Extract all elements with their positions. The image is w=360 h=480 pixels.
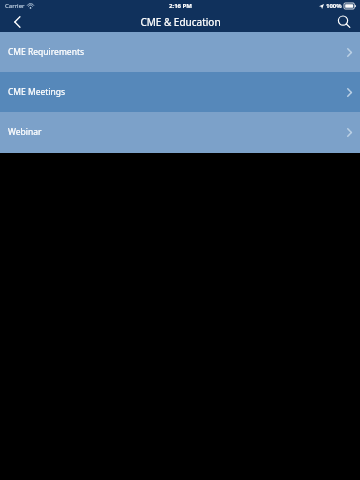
staticText: 2:16 PM [169, 2, 192, 10]
staticText: 100% [326, 2, 342, 10]
button[interactable]: Search [328, 12, 360, 32]
staticText: CME Meetings [8, 86, 66, 98]
staticText: CME Requirements [8, 46, 85, 58]
staticText: Webinar [8, 126, 42, 138]
button[interactable]: Back [0, 12, 34, 32]
button[interactable]: CME Meetings [0, 72, 360, 112]
button[interactable]: Webinar [0, 112, 360, 152]
staticText: CME & Education [140, 15, 221, 29]
staticText: Carrier [5, 2, 25, 10]
button[interactable]: CME Requirements [0, 32, 360, 72]
